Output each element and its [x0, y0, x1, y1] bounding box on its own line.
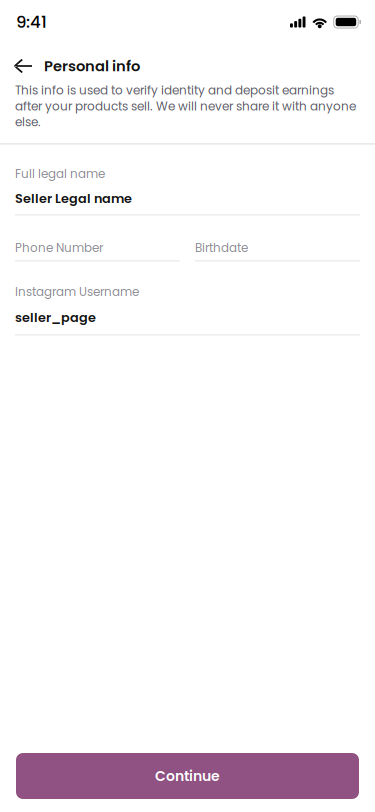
staticText: Seller Legal name: [15, 189, 132, 207]
staticText: Phone Number: [15, 240, 103, 256]
button[interactable]: Continue: [16, 753, 359, 799]
staticText: This info is used to verify identity and…: [15, 82, 356, 130]
staticText: Birthdate: [195, 240, 248, 256]
staticText: 9:41: [16, 10, 47, 33]
staticText: Personal info: [44, 56, 140, 76]
staticText: Continue: [155, 766, 220, 786]
staticText: Instagram Username: [15, 284, 139, 300]
staticText: Full legal name: [15, 166, 105, 182]
staticText: seller_page: [15, 308, 96, 326]
button[interactable]: Back: [14, 54, 44, 78]
